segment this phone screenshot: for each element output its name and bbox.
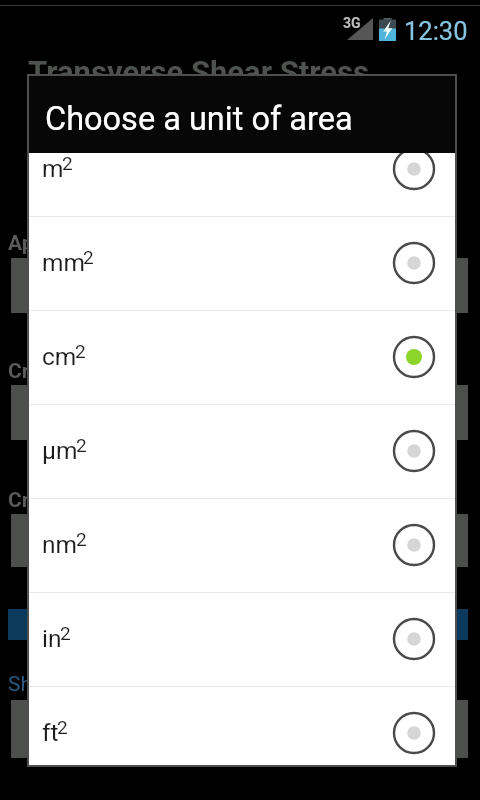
staticText: 2	[75, 340, 86, 362]
staticText: nm	[42, 530, 78, 559]
other: Select nm squared	[392, 523, 436, 567]
button[interactable]: nm	[29, 498, 455, 592]
staticText: mm	[42, 248, 85, 277]
staticText: Choose a unit of area	[45, 100, 353, 138]
staticText: 2	[76, 528, 87, 550]
staticText: 2	[57, 716, 68, 738]
staticText: 2	[83, 246, 94, 268]
other: Select µm squared	[392, 429, 436, 473]
other: Select ft squared	[392, 711, 436, 755]
other: Select mm squared	[392, 241, 436, 285]
staticText: 3G	[343, 15, 361, 31]
staticText: 12:30	[404, 16, 468, 46]
other: Select cm squared	[392, 335, 436, 379]
staticText: Cross section I value	[8, 488, 205, 513]
button[interactable]: ft	[29, 686, 455, 765]
button[interactable]: in	[29, 592, 455, 686]
button[interactable]: cm	[29, 310, 455, 404]
button[interactable]	[8, 609, 468, 640]
other: Select in squared	[392, 617, 436, 661]
staticText: Transverse Shear Stress	[28, 54, 369, 90]
staticText: ft	[42, 718, 59, 747]
other: Select m squared	[392, 153, 436, 191]
staticText: Applied Shear Force	[8, 231, 199, 256]
staticText: Cross section Q value	[8, 359, 213, 384]
other: Battery charging	[379, 18, 396, 41]
staticText: m	[42, 154, 64, 183]
staticText: Shear Stress	[8, 672, 126, 697]
staticText: in	[42, 624, 62, 653]
staticText: 2	[62, 153, 73, 174]
button[interactable]: µm	[29, 404, 455, 498]
staticText: µm	[42, 436, 78, 465]
staticText: 2	[76, 434, 87, 456]
staticText: cm	[42, 342, 77, 371]
button[interactable]: m	[29, 153, 455, 216]
button[interactable]: mm	[29, 216, 455, 310]
staticText: 2	[60, 622, 71, 644]
